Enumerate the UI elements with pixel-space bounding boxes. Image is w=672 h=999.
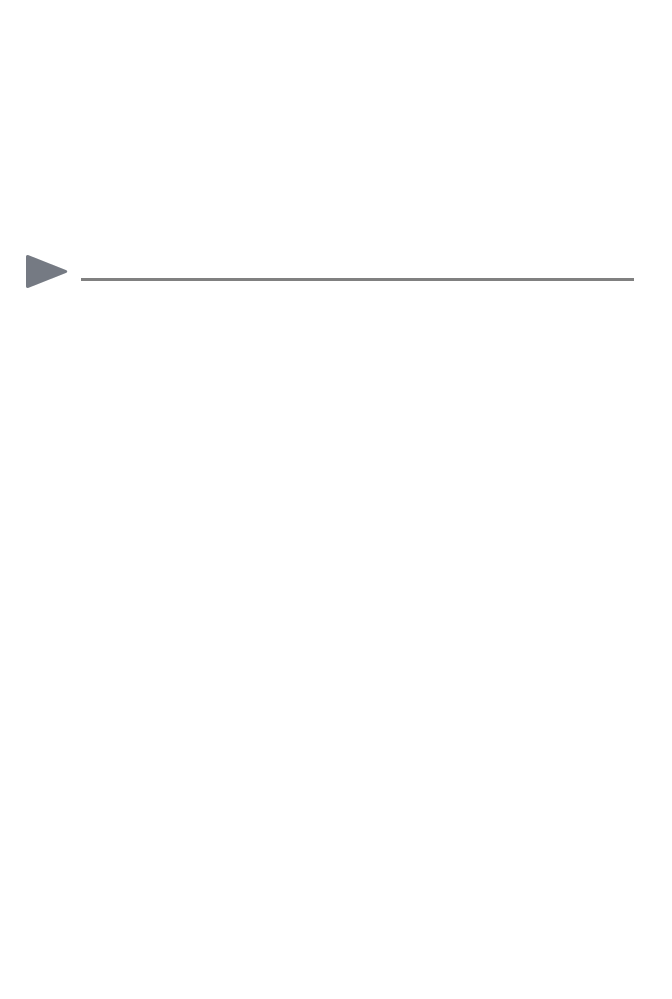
button[interactable]: Play bbox=[26, 255, 68, 288]
